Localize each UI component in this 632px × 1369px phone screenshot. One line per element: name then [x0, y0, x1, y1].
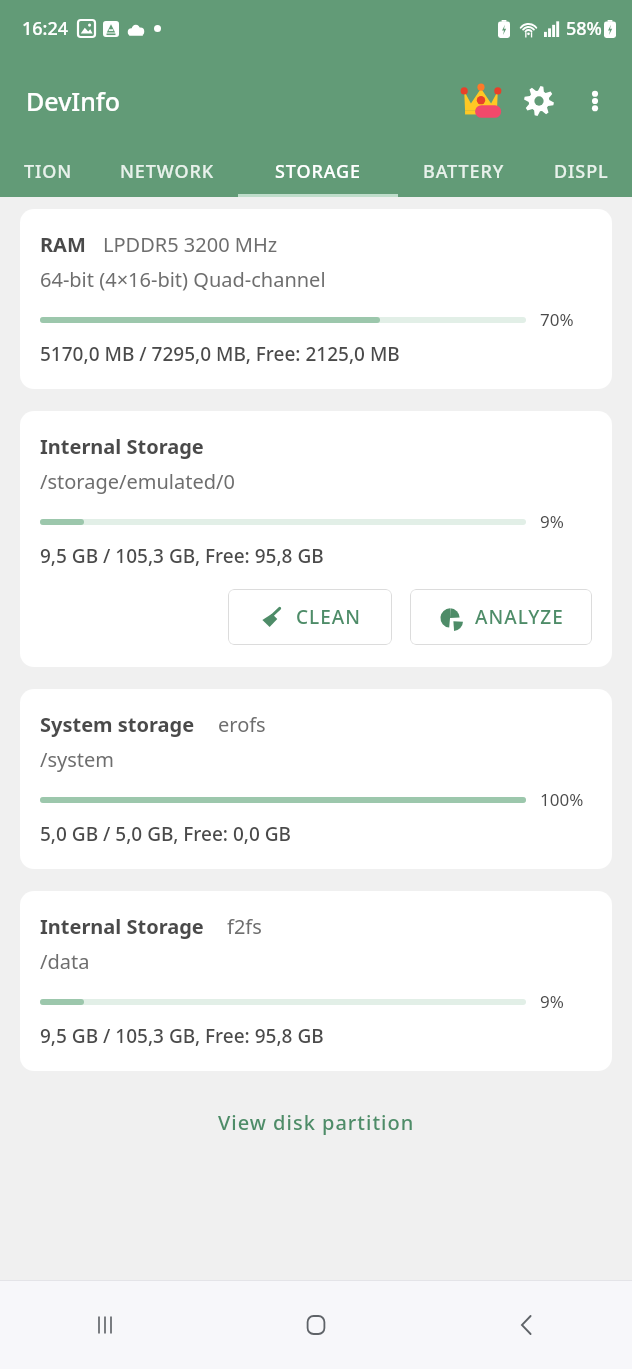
- staticText: STORAGE: [275, 159, 361, 184]
- button[interactable]: ANALYZE: [410, 589, 592, 645]
- staticText: /storage/emulated/0: [40, 468, 235, 495]
- button[interactable]: Internal Storage: [20, 411, 612, 667]
- button[interactable]: RAM: [20, 209, 612, 389]
- button[interactable]: CLEAN: [228, 589, 392, 645]
- button[interactable]: Internal Storage: [20, 891, 612, 1071]
- staticText: 64-bit (4×16-bit) Quad-channel: [40, 266, 326, 293]
- button[interactable]: Back: [421, 1281, 632, 1369]
- staticText: View disk partition: [218, 1109, 415, 1136]
- staticText: Internal Storage: [40, 913, 204, 940]
- staticText: 9%: [540, 510, 564, 533]
- button[interactable]: TION: [0, 146, 96, 197]
- button[interactable]: NETWORK: [96, 146, 238, 197]
- button[interactable]: BATTERY: [398, 146, 530, 197]
- button[interactable]: View disk partition: [20, 1099, 612, 1145]
- staticText: f2fs: [227, 913, 262, 940]
- staticText: 5170,0 MB / 7295,0 MB, Free: 2125,0 MB: [40, 341, 400, 367]
- staticText: 100%: [540, 788, 584, 811]
- button[interactable]: Recent apps: [0, 1281, 210, 1369]
- staticText: 16:24: [22, 16, 69, 41]
- button[interactable]: More options: [568, 74, 622, 128]
- staticText: /data: [40, 948, 90, 975]
- staticText: CLEAN: [296, 604, 361, 630]
- staticText: 9,5 GB / 105,3 GB, Free: 95,8 GB: [40, 1023, 324, 1049]
- staticText: 58%: [566, 16, 602, 41]
- staticText: ANALYZE: [475, 604, 564, 630]
- staticText: NETWORK: [120, 159, 215, 184]
- staticText: TION: [24, 159, 73, 184]
- staticText: RAM: [40, 231, 86, 258]
- button[interactable]: STORAGE: [238, 146, 398, 197]
- staticText: System storage: [40, 711, 195, 738]
- staticText: 9,5 GB / 105,3 GB, Free: 95,8 GB: [40, 543, 324, 569]
- button[interactable]: Settings: [510, 72, 568, 130]
- button[interactable]: Home: [210, 1281, 421, 1369]
- staticText: DevInfo: [26, 84, 121, 118]
- staticText: LPDDR5 3200 MHz: [103, 231, 278, 258]
- staticText: erofs: [218, 711, 266, 738]
- staticText: DISPL: [554, 159, 609, 184]
- staticText: /system: [40, 746, 114, 773]
- staticText: 70%: [540, 308, 574, 331]
- staticText: BATTERY: [423, 159, 505, 184]
- button[interactable]: Upgrade to PRO: [452, 72, 510, 130]
- button[interactable]: System storage: [20, 689, 612, 869]
- button[interactable]: DISPL: [530, 146, 632, 197]
- staticText: Internal Storage: [40, 433, 204, 460]
- staticText: 9%: [540, 990, 564, 1013]
- staticText: 5,0 GB / 5,0 GB, Free: 0,0 GB: [40, 821, 292, 847]
